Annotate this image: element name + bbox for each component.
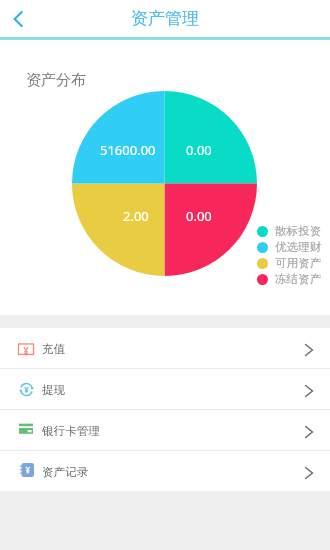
button[interactable]: 银行卡管理 <box>0 410 330 450</box>
staticText: 0.00 <box>186 207 212 225</box>
staticText: 可用资产 <box>275 256 322 271</box>
button[interactable]: 资产记录 <box>0 451 330 491</box>
staticText: 提现 <box>42 383 66 398</box>
staticText: 银行卡管理 <box>42 424 100 439</box>
staticText: 0.00 <box>186 141 212 159</box>
button[interactable]: 提现 <box>0 369 330 409</box>
staticText: 散标投资 <box>275 224 322 239</box>
staticText: 充值 <box>42 342 66 357</box>
staticText: 资产分布 <box>26 71 86 90</box>
staticText: 冻结资产 <box>275 272 322 287</box>
staticText: 资产管理 <box>131 8 199 29</box>
button[interactable]: Back <box>0 1 36 37</box>
staticText: 51600.00 <box>100 141 156 159</box>
staticText: 2.00 <box>123 207 149 225</box>
button[interactable]: 充值 <box>0 328 330 368</box>
staticText: 资产记录 <box>42 465 89 480</box>
staticText: 优选理财 <box>275 240 322 255</box>
